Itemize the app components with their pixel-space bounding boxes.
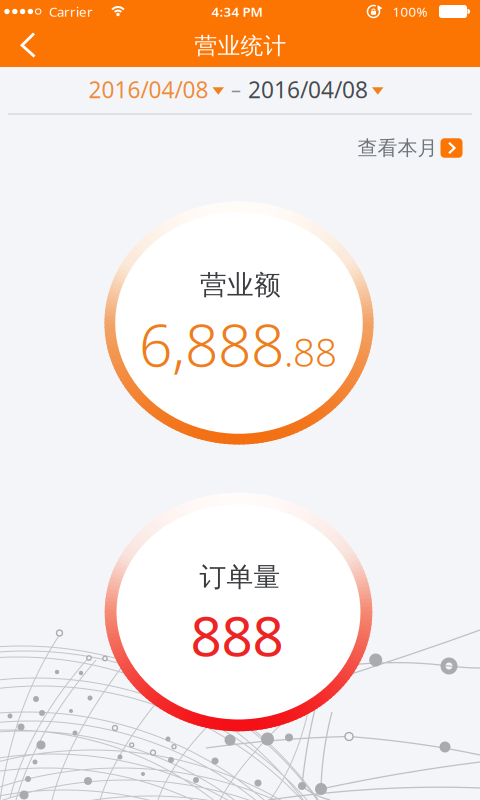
button[interactable]: 2016/04/08 — [88, 74, 383, 104]
staticText: 4:34 PM — [211, 3, 262, 20]
staticText: 订单量 — [199, 561, 280, 593]
staticText: .88 — [284, 326, 337, 377]
staticText: 查看本月 — [357, 136, 437, 160]
staticText: 2016/04/08 — [88, 74, 208, 104]
button[interactable]: 查看本月 — [357, 136, 462, 160]
staticText: – — [231, 76, 241, 103]
staticText: 营业额 — [200, 269, 281, 301]
staticText: 888 — [190, 599, 283, 671]
staticText: 100% — [392, 3, 427, 20]
staticText: 营业统计 — [194, 32, 286, 60]
staticText: 2016/04/08 — [248, 74, 368, 104]
staticText: 6,888 — [139, 305, 284, 383]
staticText: Carrier — [49, 3, 93, 20]
button[interactable]: 返回 — [11, 23, 45, 66]
